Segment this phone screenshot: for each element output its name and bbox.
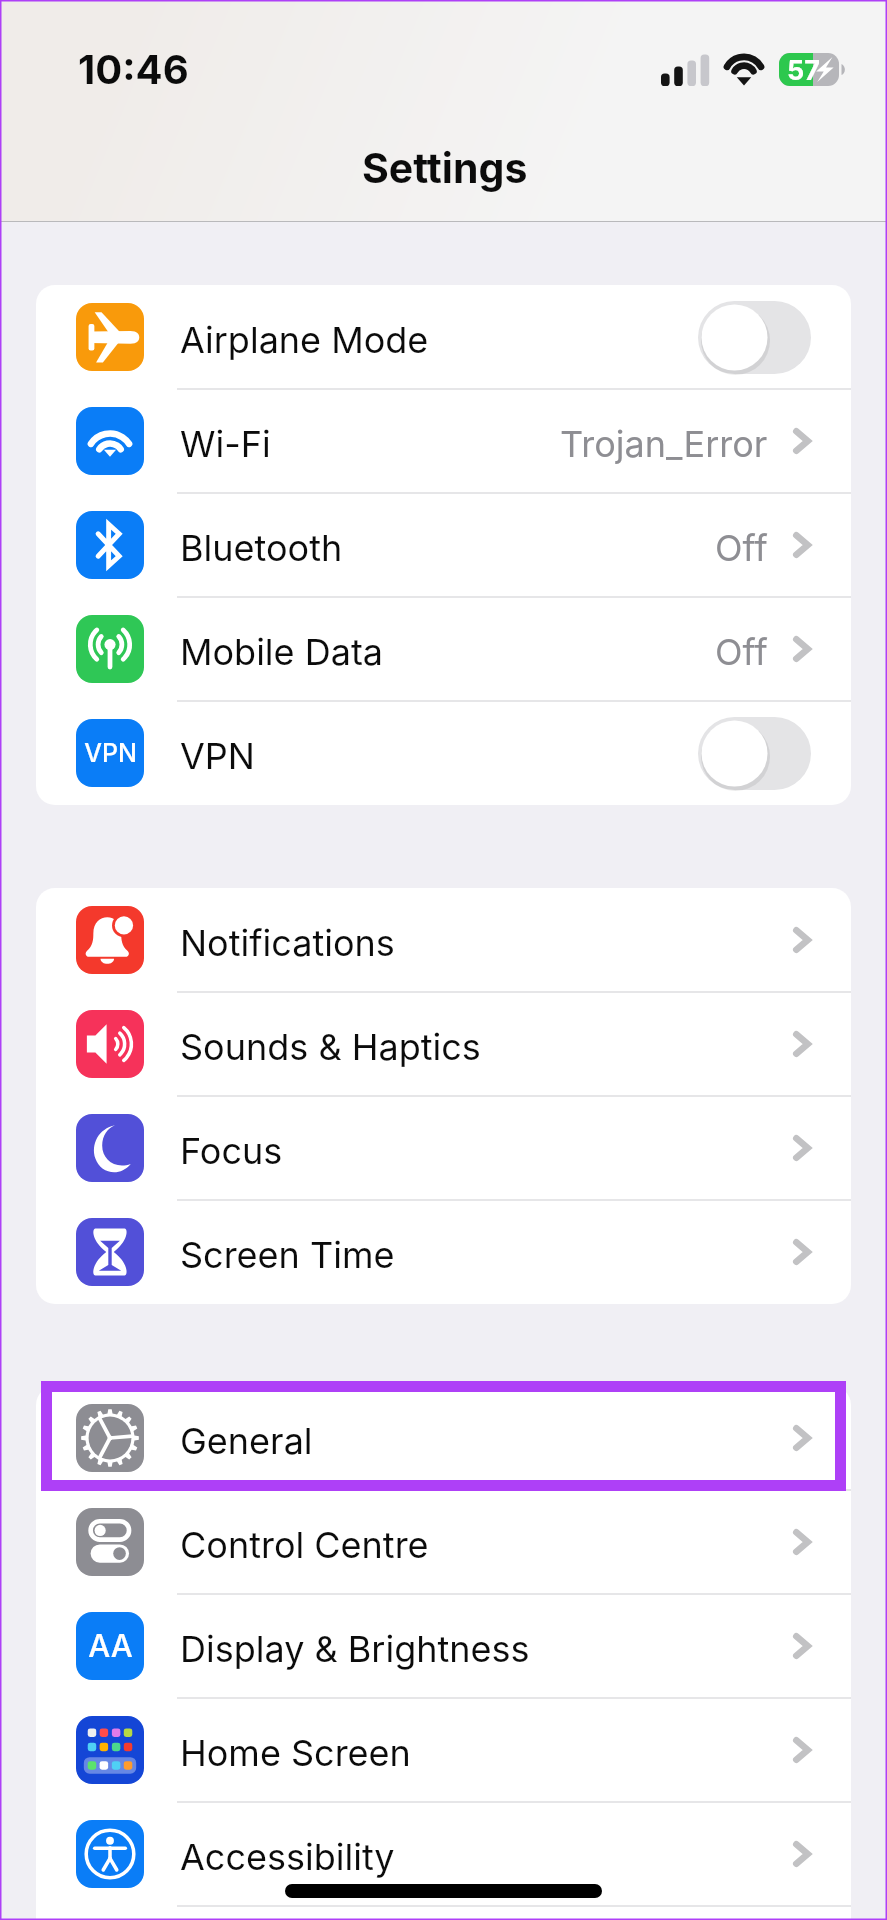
button[interactable]: Airplane Mode <box>36 285 851 389</box>
button[interactable]: Bluetooth <box>36 493 851 597</box>
staticText: AA <box>88 1627 133 1665</box>
staticText: Home Screen <box>180 1731 411 1775</box>
staticText: Off <box>715 630 768 674</box>
staticText: Mobile Data <box>180 630 384 674</box>
button[interactable]: General <box>36 1386 851 1490</box>
button[interactable]: Screen Time <box>36 1200 851 1304</box>
other: Open <box>793 428 811 454</box>
staticText: Wi-Fi <box>180 422 271 466</box>
other: Open <box>793 1031 811 1057</box>
staticText: Display & Brightness <box>180 1627 530 1671</box>
button[interactable]: Sounds & Haptics <box>36 992 851 1096</box>
other: Open <box>793 1841 811 1867</box>
other: Open <box>793 1529 811 1555</box>
button[interactable]: Wi-Fi <box>36 389 851 493</box>
button[interactable]: Focus <box>36 1096 851 1200</box>
staticText: VPN <box>84 738 137 768</box>
staticText: Screen Time <box>180 1233 395 1277</box>
staticText: Accessibility <box>180 1835 395 1879</box>
other: Open <box>793 1737 811 1763</box>
staticText: General <box>180 1419 313 1463</box>
staticText: Notifications <box>180 921 395 965</box>
staticText: Trojan_Error <box>560 422 768 466</box>
staticText: Control Centre <box>180 1523 429 1567</box>
staticText: Bluetooth <box>180 526 343 570</box>
other: Open <box>793 927 811 953</box>
staticText: 57 <box>787 54 820 87</box>
button[interactable]: Home Screen <box>36 1698 851 1802</box>
staticText: Airplane Mode <box>180 318 429 362</box>
other: Open <box>793 636 811 662</box>
staticText: Off <box>715 526 768 570</box>
button[interactable]: AA <box>36 1594 851 1698</box>
other: Open <box>793 1135 811 1161</box>
staticText: Settings <box>362 143 528 193</box>
other: Open <box>793 532 811 558</box>
button[interactable]: VPN <box>36 701 851 805</box>
button[interactable]: Accessibility <box>36 1802 851 1906</box>
other: Open <box>793 1425 811 1451</box>
button[interactable]: Airplane Mode switch, off <box>698 301 811 374</box>
staticText: Focus <box>180 1129 283 1173</box>
other: Open <box>793 1633 811 1659</box>
button[interactable]: VPN switch, off <box>698 717 811 790</box>
staticText: VPN <box>180 734 255 778</box>
staticText: Sounds & Haptics <box>180 1025 481 1069</box>
staticText: 10:46 <box>78 45 189 93</box>
button[interactable]: Notifications <box>36 888 851 992</box>
button[interactable]: Control Centre <box>36 1490 851 1594</box>
button[interactable]: Mobile Data <box>36 597 851 701</box>
other: Open <box>793 1239 811 1265</box>
